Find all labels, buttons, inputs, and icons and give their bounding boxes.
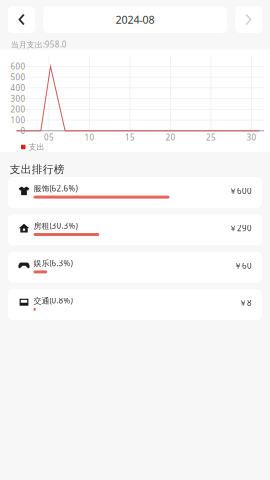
staticText: ￥60 xyxy=(234,260,252,271)
staticText: ￥290 xyxy=(229,223,252,234)
staticText: 500 xyxy=(10,72,25,82)
staticText: ￥8 xyxy=(239,298,252,308)
staticText: 300 xyxy=(10,93,25,104)
button[interactable]: 服饰(62.6%) xyxy=(8,177,262,208)
staticText: 支出 xyxy=(28,142,44,152)
button[interactable]: 房租(30.3%) xyxy=(8,214,262,245)
staticText: 20 xyxy=(165,132,175,143)
button[interactable]: Previous month xyxy=(8,6,35,33)
staticText: 100 xyxy=(10,115,25,125)
staticText: 娱乐(6.3%) xyxy=(33,258,72,268)
staticText: 30 xyxy=(246,132,256,143)
button[interactable]: 娱乐(6.3%) xyxy=(8,252,262,283)
staticText: ￥600 xyxy=(229,185,252,196)
staticText: 当月支出:958.0 xyxy=(11,39,67,50)
button[interactable]: Next month xyxy=(235,6,262,33)
staticText: 房租(30.3%) xyxy=(33,220,77,231)
staticText: 服饰(62.6%) xyxy=(33,183,77,194)
staticText: 400 xyxy=(10,83,25,93)
staticText: 10 xyxy=(84,132,94,143)
staticText: 200 xyxy=(10,104,25,115)
staticText: 交通(0.8%) xyxy=(33,295,72,306)
button[interactable]: 交通(0.8%) xyxy=(8,289,262,320)
staticText: 2024-08 xyxy=(115,12,154,27)
staticText: 25 xyxy=(206,132,216,143)
staticText: 15 xyxy=(125,132,135,143)
staticText: 0 xyxy=(20,125,25,136)
staticText: 600 xyxy=(10,61,25,72)
staticText: 支出排行榜 xyxy=(10,163,65,176)
staticText: 05 xyxy=(44,132,54,143)
